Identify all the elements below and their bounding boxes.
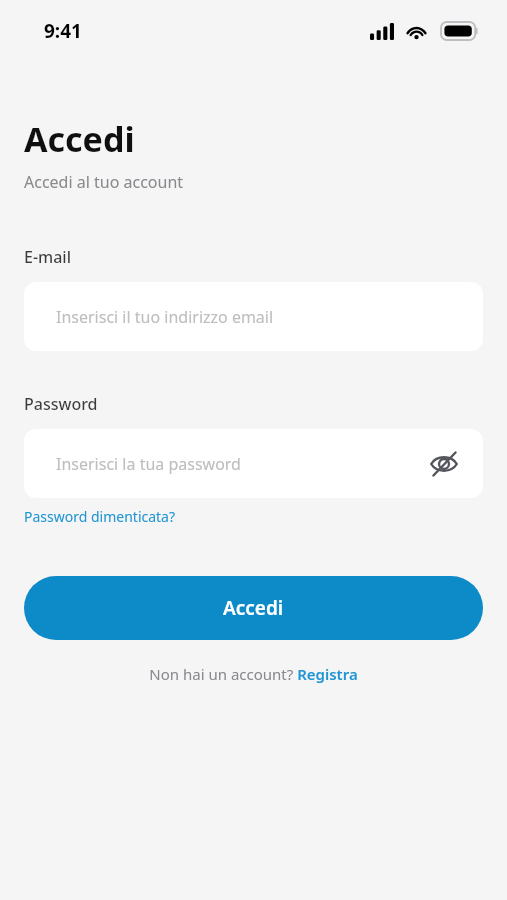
staticText: Accedi: [223, 595, 284, 621]
button[interactable]: Password dimenticata?: [24, 507, 176, 526]
staticText: Accedi: [24, 116, 135, 162]
button[interactable]: Accedi: [24, 576, 483, 640]
button[interactable]: Inserisci il tuo indirizzo email: [24, 282, 483, 351]
staticText: Inserisci la tua password: [56, 453, 241, 475]
staticText: Password dimenticata?: [24, 507, 176, 526]
staticText: E-mail: [24, 246, 71, 268]
staticText: Password: [24, 393, 98, 415]
staticText: 9:41: [44, 18, 82, 44]
button[interactable]: Inserisci la tua password: [24, 429, 483, 498]
staticText: Inserisci il tuo indirizzo email: [56, 306, 274, 328]
button[interactable]: Mostra password: [421, 441, 467, 487]
staticText: Accedi al tuo account: [24, 171, 184, 193]
staticText: Non hai un account? Registra: [149, 664, 358, 684]
button[interactable]: Non hai un account? Registra: [0, 664, 507, 684]
